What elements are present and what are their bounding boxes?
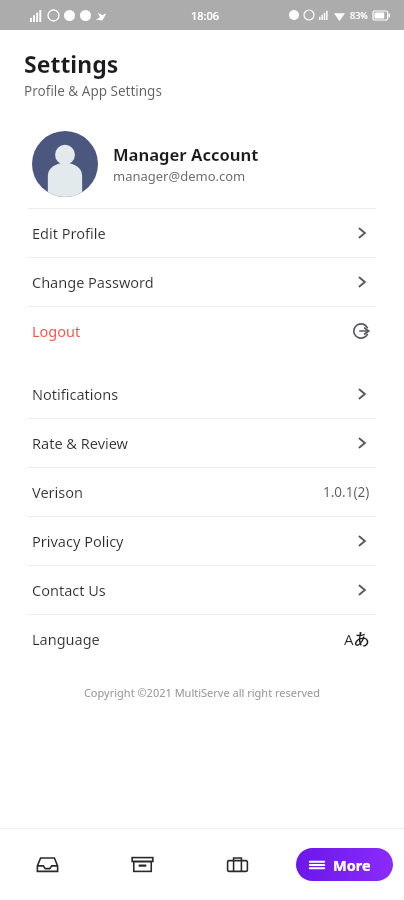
staticText: Profile & App Settings — [24, 82, 162, 100]
staticText: manager@demo.com — [113, 167, 246, 185]
button[interactable]: Logout — [18, 307, 386, 355]
staticText: Contact Us — [32, 580, 106, 600]
button[interactable]: Notifications — [18, 370, 386, 418]
staticText: Change Password — [32, 272, 154, 292]
button[interactable]: Rate & Review — [18, 419, 386, 467]
button[interactable]: Archive — [95, 829, 190, 900]
staticText: 18:06 — [191, 8, 220, 23]
staticText: Copyright ©2021 MultiServe all right res… — [0, 685, 404, 700]
staticText: Rate & Review — [32, 433, 129, 453]
button[interactable]: Verison — [18, 468, 386, 516]
button[interactable]: Inbox — [0, 829, 95, 900]
staticText: 83% — [350, 9, 368, 21]
button[interactable]: Manager Account — [18, 120, 386, 208]
button[interactable]: Privacy Policy — [18, 517, 386, 565]
staticText: Notifications — [32, 384, 119, 404]
staticText: Edit Profile — [32, 223, 106, 243]
staticText: Manager Account — [113, 143, 259, 165]
staticText: 1.0.1(2) — [323, 483, 370, 501]
staticText: More — [333, 855, 371, 875]
button[interactable]: Change Password — [18, 258, 386, 306]
button[interactable]: Edit Profile — [18, 209, 386, 257]
button[interactable]: Contact Us — [18, 566, 386, 614]
button[interactable]: Jobs — [190, 829, 285, 900]
button[interactable]: More — [296, 848, 393, 881]
staticText: あ — [354, 630, 370, 649]
staticText: Language — [32, 629, 100, 649]
staticText: Settings — [24, 48, 119, 79]
staticText: Verison — [32, 482, 83, 502]
other: Logout — [352, 322, 370, 340]
staticText: Logout — [32, 321, 81, 341]
staticText: A — [344, 629, 354, 649]
staticText: Privacy Policy — [32, 531, 124, 551]
button[interactable]: Language — [18, 615, 386, 663]
other: Language — [344, 629, 370, 649]
